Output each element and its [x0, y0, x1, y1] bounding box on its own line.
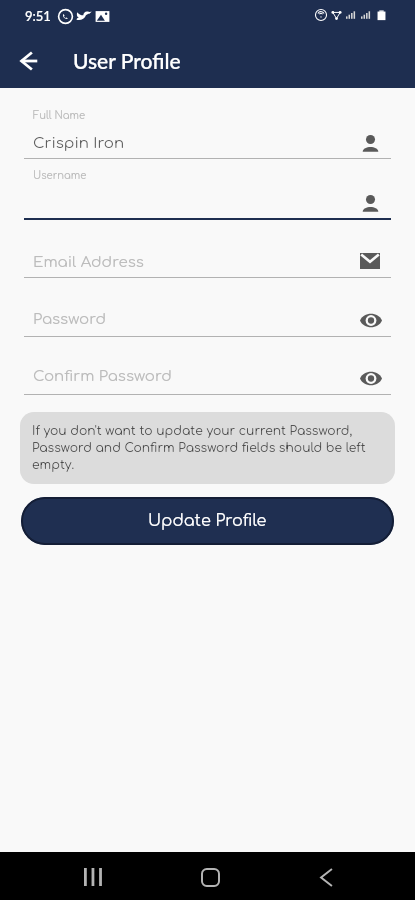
staticText: Crispin Iron — [33, 135, 125, 152]
staticText: Update Profile — [148, 512, 267, 530]
staticText: Full Name — [33, 110, 86, 121]
button[interactable]: Back — [304, 857, 348, 897]
staticText: 9:51 — [25, 8, 51, 24]
button[interactable]: Show password — [358, 365, 384, 391]
button[interactable]: Show password — [358, 307, 384, 333]
staticText: User Profile — [73, 48, 181, 73]
staticText: Email Address — [33, 254, 144, 271]
button[interactable]: Recent apps — [71, 857, 115, 897]
button[interactable]: Home — [188, 857, 232, 897]
button[interactable]: Update Profile — [21, 497, 394, 545]
button[interactable]: Account — [357, 190, 383, 216]
staticText: Password — [33, 311, 107, 328]
button[interactable]: Account — [357, 130, 383, 156]
button[interactable]: Back — [0, 33, 58, 89]
button[interactable]: Email — [357, 248, 383, 274]
staticText: If you don't want to update your current… — [32, 424, 381, 472]
staticText: Confirm Password — [33, 368, 172, 385]
staticText: Username — [33, 170, 87, 181]
